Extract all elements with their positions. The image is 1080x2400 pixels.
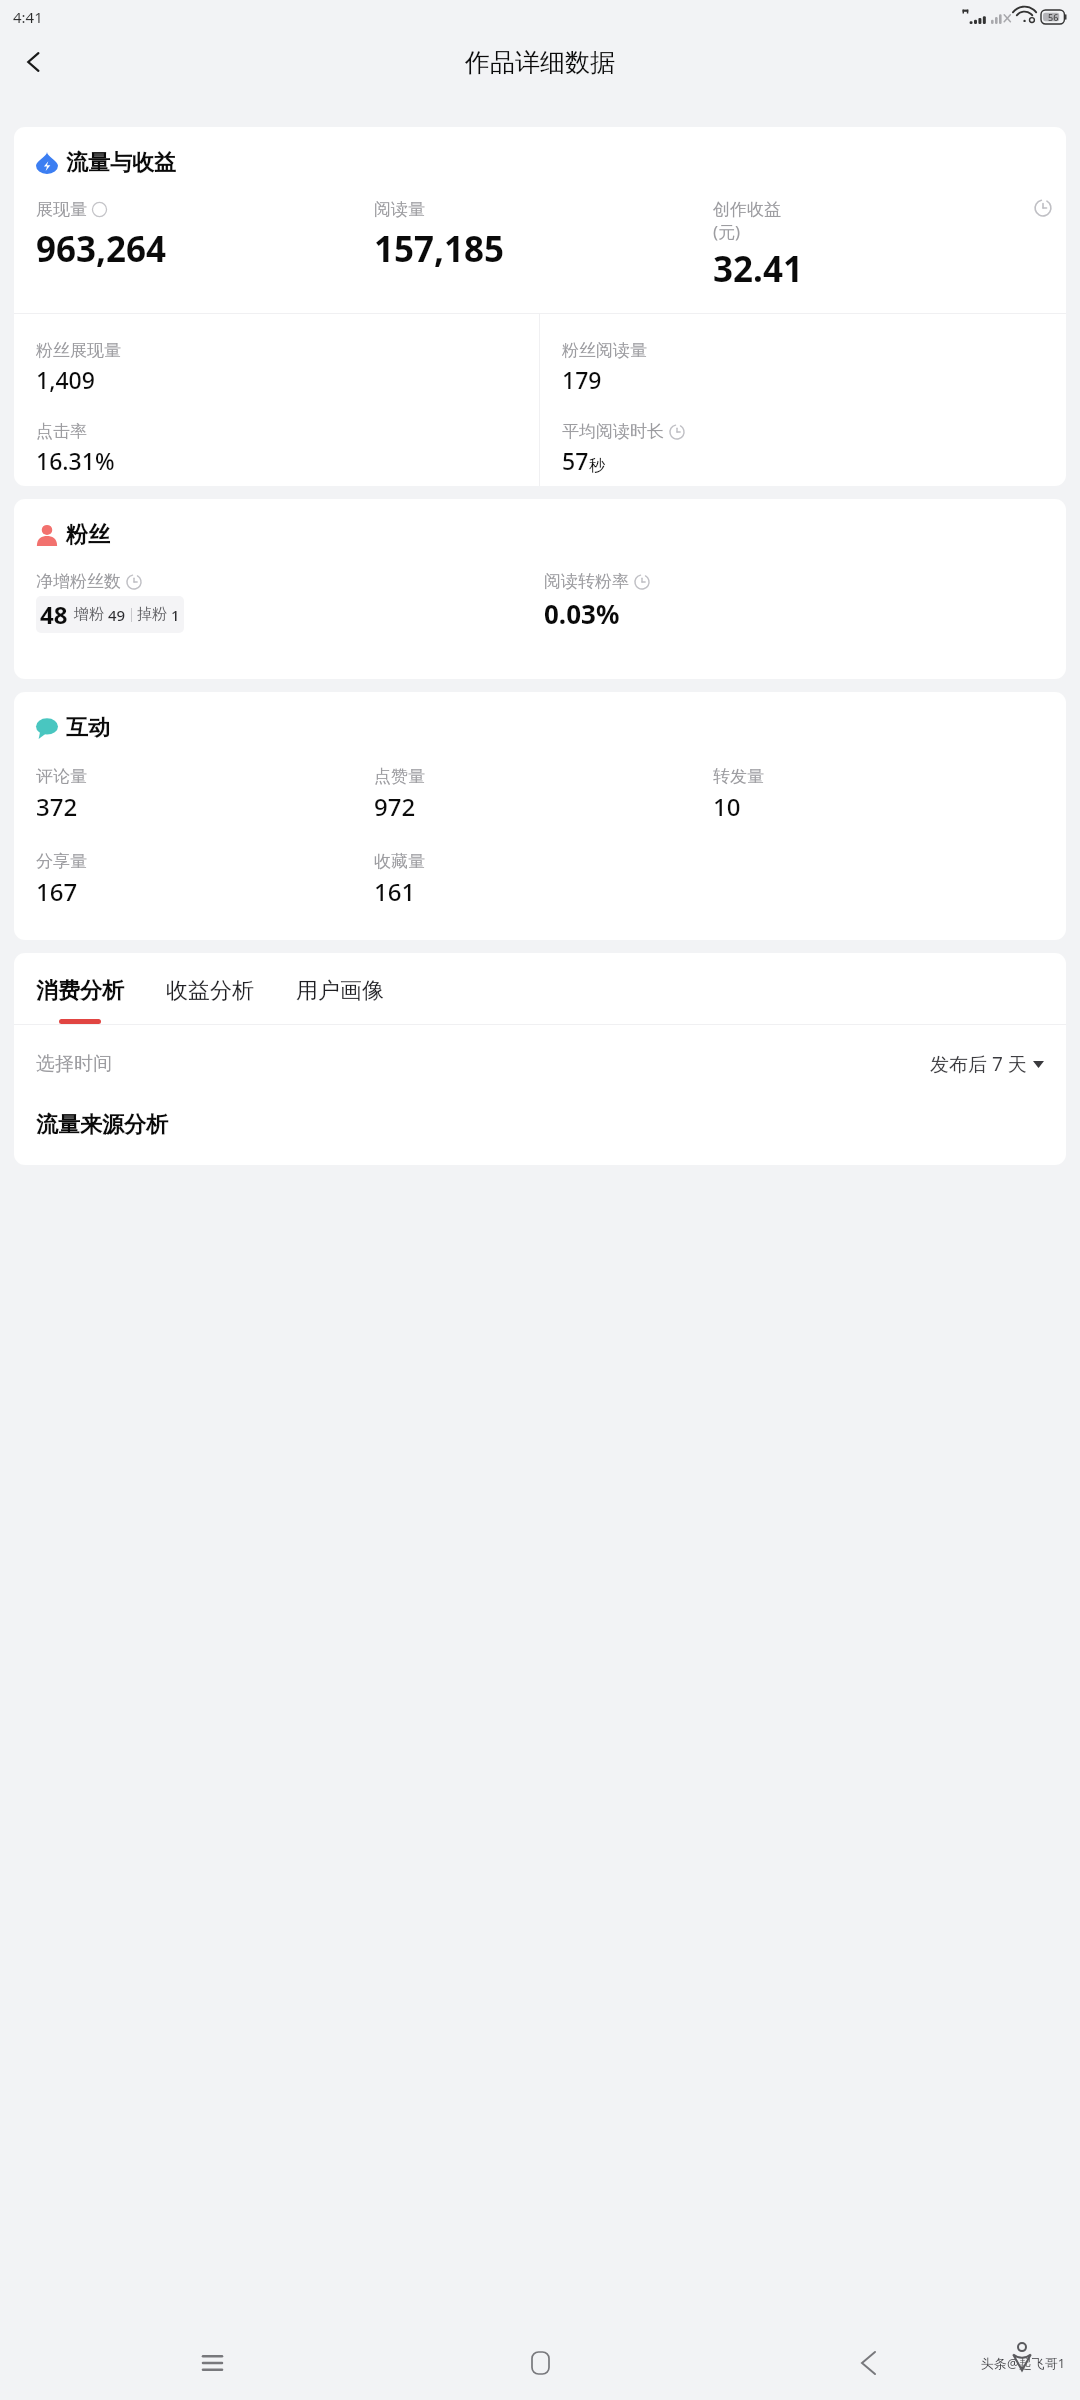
button[interactable]: Back — [845, 2340, 891, 2386]
staticText: 16.31% — [36, 445, 115, 476]
staticText: 收益分析 — [166, 977, 254, 1005]
staticText: 阅读量 — [374, 199, 425, 220]
staticText: 掉粉 — [137, 605, 167, 624]
staticText: 秒 — [589, 456, 605, 476]
staticText: 阅读转粉率 — [544, 571, 629, 592]
button[interactable]: Home — [517, 2340, 563, 2386]
staticText: 167 — [36, 875, 78, 908]
staticText: 评论量 — [36, 766, 87, 787]
staticText: 作品详细数据 — [465, 47, 615, 78]
staticText: 平均阅读时长 — [562, 421, 664, 442]
staticText: 56 — [1048, 11, 1059, 23]
staticText: 净增粉丝数 — [36, 571, 121, 592]
staticText: 流量与收益 — [66, 149, 176, 177]
button[interactable]: Recent apps — [189, 2340, 235, 2386]
staticText: 头条@起飞哥1 — [981, 2354, 1066, 2372]
staticText: 用户画像 — [296, 977, 384, 1005]
staticText: 分享量 — [36, 851, 87, 872]
staticText: 1,409 — [36, 364, 95, 395]
staticText: 流量来源分析 — [36, 1111, 168, 1139]
staticText: 49 — [108, 605, 126, 625]
staticText: 161 — [374, 875, 416, 908]
staticText: 增粉 — [74, 605, 104, 624]
staticText: 粉丝阅读量 — [562, 340, 647, 361]
staticText: 转发量 — [713, 766, 764, 787]
staticText: 157,185 — [374, 225, 505, 273]
button[interactable]: 消费分析 — [36, 977, 124, 1024]
staticText: 963,264 — [36, 225, 167, 273]
staticText: 收藏量 — [374, 851, 425, 872]
staticText: 179 — [562, 364, 602, 395]
staticText: 粉丝展现量 — [36, 340, 121, 361]
staticText: 48 — [40, 598, 68, 631]
staticText: 1 — [171, 605, 180, 625]
staticText: 消费分析 — [36, 977, 124, 1005]
staticText: 10 — [713, 790, 741, 823]
staticText: 372 — [36, 790, 78, 823]
button[interactable]: 用户画像 — [296, 977, 384, 1024]
staticText: 32.41 — [713, 245, 803, 293]
staticText: 0.03% — [544, 596, 620, 631]
button[interactable]: 收益分析 — [166, 977, 254, 1024]
staticText: 57 — [562, 445, 589, 476]
button[interactable]: Back — [8, 36, 60, 88]
staticText: 点击率 — [36, 421, 87, 442]
staticText: 点赞量 — [374, 766, 425, 787]
staticText: 展现量 — [36, 199, 87, 220]
staticText: 选择时间 — [36, 1052, 112, 1076]
staticText: 创作收益 — [713, 199, 781, 220]
staticText: (元) — [713, 220, 741, 243]
staticText: 4:41 — [13, 7, 43, 27]
button[interactable]: 选择时间 — [36, 1051, 1044, 1077]
staticText: 互动 — [66, 714, 110, 742]
staticText: 972 — [374, 790, 416, 823]
staticText: 发布后 7 天 — [930, 1051, 1027, 1077]
staticText: 粉丝 — [66, 521, 110, 549]
